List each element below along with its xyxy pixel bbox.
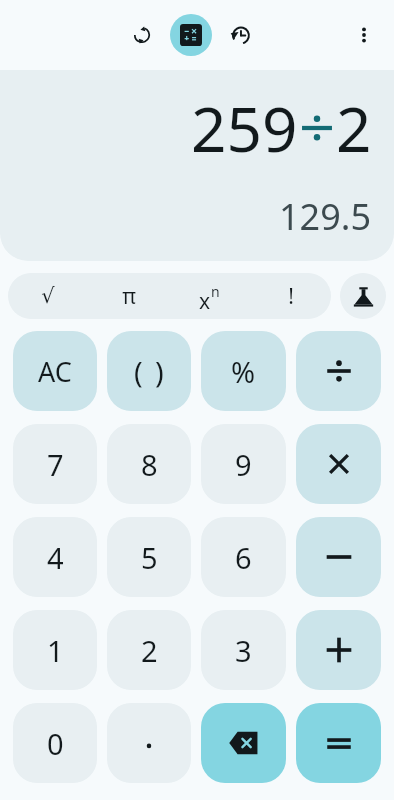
staticText: 8 — [141, 445, 158, 484]
button[interactable]: 3 — [201, 610, 286, 690]
staticText: 129.5 — [279, 192, 372, 241]
button[interactable]: ( — [107, 331, 191, 411]
button[interactable]: 0 — [13, 703, 97, 783]
button[interactable] — [296, 331, 381, 411]
button[interactable]: 7 — [13, 424, 97, 504]
button[interactable]: History — [218, 13, 262, 57]
staticText: 9 — [235, 445, 252, 484]
staticText: x — [199, 287, 211, 316]
button[interactable]: 1 — [13, 610, 97, 690]
button[interactable]: Calculator — [170, 14, 212, 56]
button[interactable]: More options — [342, 13, 386, 57]
staticText: ( — [134, 352, 143, 391]
button[interactable] — [296, 703, 381, 783]
button[interactable]: 8 — [107, 424, 191, 504]
button[interactable]: Convert — [120, 13, 164, 57]
staticText: % — [231, 352, 256, 391]
button[interactable]: 5 — [107, 517, 191, 597]
button[interactable]: π — [88, 273, 169, 319]
staticText: π — [122, 282, 136, 311]
staticText: 2 — [336, 86, 372, 170]
button[interactable] — [107, 703, 191, 783]
staticText: √ — [41, 284, 55, 308]
button[interactable] — [296, 424, 381, 504]
staticText: 1 — [47, 631, 64, 670]
staticText: 5 — [141, 538, 158, 577]
button[interactable]: 9 — [201, 424, 286, 504]
button[interactable]: Backspace — [201, 703, 286, 783]
button[interactable]: 4 — [13, 517, 97, 597]
staticText: 2 — [141, 631, 158, 670]
staticText: n — [211, 282, 220, 301]
staticText: 7 — [47, 445, 64, 484]
button[interactable] — [296, 610, 381, 690]
staticText: 0 — [47, 724, 64, 763]
button[interactable]: 6 — [201, 517, 286, 597]
button[interactable] — [296, 517, 381, 597]
button[interactable]: % — [201, 331, 286, 411]
button[interactable]: Scientific — [340, 273, 386, 319]
button[interactable]: ! — [250, 273, 331, 319]
staticText: 3 — [235, 631, 252, 670]
button[interactable]: √ — [8, 273, 88, 319]
staticText: 6 — [235, 538, 252, 577]
staticText: 4 — [47, 538, 64, 577]
staticText: 259 — [191, 86, 298, 170]
staticText: AC — [38, 353, 72, 390]
button[interactable]: x — [169, 273, 250, 319]
button[interactable]: AC — [13, 331, 97, 411]
staticText: ! — [288, 282, 294, 311]
button[interactable]: 2 — [107, 610, 191, 690]
staticText: ) — [155, 352, 164, 391]
